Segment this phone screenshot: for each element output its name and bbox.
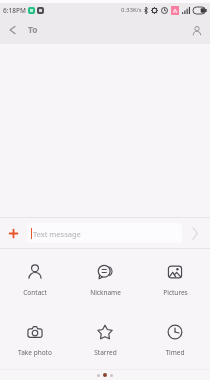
staticText: Pictures (163, 288, 188, 297)
button[interactable]: Pictures (140, 249, 210, 309)
button[interactable]: Nickname (70, 249, 140, 309)
staticText: Text message (33, 229, 81, 239)
staticText: Nickname (90, 288, 121, 297)
button[interactable]: Take photo (0, 309, 70, 369)
button[interactable]: Text message (27, 223, 182, 243)
staticText: Starred (94, 348, 117, 357)
button[interactable]: Add attachment (0, 218, 27, 248)
button[interactable]: Timed (140, 309, 210, 369)
staticText: A (173, 7, 178, 15)
button[interactable]: Starred (70, 309, 140, 369)
button[interactable]: Contact (0, 249, 70, 309)
button[interactable]: Send (182, 218, 210, 248)
staticText: Contact (23, 288, 47, 297)
staticText: 0.33K/s (121, 6, 142, 14)
staticText: 6:18PM (3, 6, 26, 15)
staticText: Take photo (18, 348, 52, 357)
button[interactable]: Contacts (183, 17, 210, 44)
button[interactable]: Back (0, 18, 25, 44)
staticText: Timed (165, 348, 185, 357)
staticText: To (28, 24, 38, 36)
